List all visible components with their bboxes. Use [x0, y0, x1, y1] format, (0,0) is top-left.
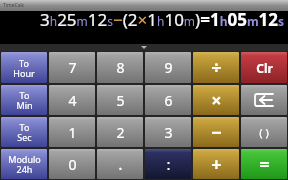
staticText: −	[211, 120, 222, 145]
staticText: +	[211, 152, 222, 177]
button[interactable]: =	[241, 149, 287, 179]
staticText: 4	[68, 91, 77, 110]
staticText: 6	[164, 91, 173, 110]
button[interactable]: −	[193, 117, 239, 147]
staticText: 8	[116, 58, 125, 77]
staticText: =	[259, 152, 270, 177]
staticText: 0	[68, 155, 77, 174]
button[interactable]: ×	[193, 85, 239, 115]
staticText: 3h25m12s−(2×1h10m)=1h05m12s	[40, 8, 285, 31]
staticText: 3	[164, 123, 173, 142]
staticText: To Min	[16, 89, 33, 111]
button[interactable]: 0	[49, 149, 95, 179]
staticText: 5	[116, 91, 125, 110]
button[interactable]	[241, 85, 287, 115]
button[interactable]: 8	[97, 52, 143, 83]
button[interactable]: +	[193, 149, 239, 179]
button[interactable]: .	[97, 149, 143, 179]
button[interactable]: 2	[97, 117, 143, 147]
button[interactable]: To Hour	[1, 52, 47, 83]
button[interactable]: 9	[145, 52, 191, 83]
button[interactable]: ÷	[193, 52, 239, 83]
button[interactable]: Modulo 24h	[1, 149, 47, 179]
staticText: 1	[68, 123, 77, 142]
button[interactable]: 5	[97, 85, 143, 115]
staticText: 9	[164, 58, 173, 77]
button[interactable]: To Sec	[1, 117, 47, 147]
button[interactable]: ( )	[241, 117, 287, 147]
staticText: 7	[68, 58, 77, 77]
staticText: ( )	[259, 125, 269, 140]
button[interactable]: 6	[145, 85, 191, 115]
button[interactable]: 3	[145, 117, 191, 147]
button[interactable]: 1	[49, 117, 95, 147]
staticText: 2	[116, 123, 125, 142]
staticText: Modulo 24h	[8, 153, 41, 175]
staticText: ×	[211, 88, 222, 113]
staticText: To Sec	[17, 121, 32, 143]
staticText: TimeCalc	[3, 2, 25, 9]
staticText: ÷	[211, 55, 222, 80]
button[interactable]: 7	[49, 52, 95, 83]
button[interactable]: :	[145, 149, 191, 179]
staticText: .	[118, 153, 123, 175]
button[interactable]: To Min	[1, 85, 47, 115]
button[interactable]: Clr	[241, 52, 287, 83]
button[interactable]: 4	[49, 85, 95, 115]
staticText: To Hour	[13, 57, 35, 79]
staticText: :	[166, 154, 171, 174]
staticText: Clr	[256, 60, 273, 76]
